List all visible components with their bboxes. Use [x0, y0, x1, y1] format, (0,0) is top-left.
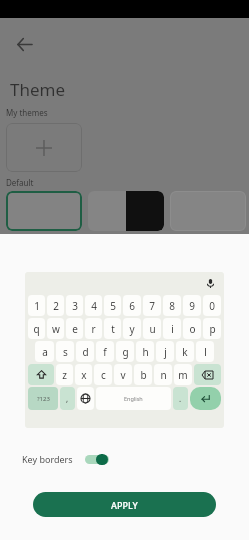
- button[interactable]: Backspace: [194, 364, 221, 385]
- button[interactable]: Back: [8, 28, 40, 60]
- staticText: .: [179, 393, 182, 404]
- staticText: Theme: [10, 78, 66, 101]
- button[interactable]: 4: [85, 295, 102, 316]
- staticText: r: [91, 322, 96, 336]
- button[interactable]: Change language: [77, 387, 94, 410]
- staticText: 9: [189, 299, 195, 313]
- button[interactable]: 8: [163, 295, 181, 316]
- button[interactable]: .: [173, 387, 188, 410]
- staticText: 8: [169, 299, 175, 313]
- staticText: z: [62, 368, 67, 382]
- staticText: 6: [129, 299, 135, 313]
- button[interactable]: Key borders: [22, 448, 249, 470]
- button[interactable]: 0: [203, 295, 221, 316]
- button[interactable]: ,: [60, 387, 75, 410]
- staticText: j: [164, 345, 167, 359]
- button[interactable]: 1: [28, 295, 45, 316]
- staticText: k: [182, 345, 188, 359]
- button[interactable]: Shift: [28, 364, 54, 385]
- staticText: q: [33, 322, 40, 336]
- staticText: s: [63, 345, 68, 359]
- button[interactable]: c: [94, 364, 112, 385]
- button[interactable]: i: [163, 318, 181, 339]
- staticText: c: [101, 368, 106, 382]
- button[interactable]: g: [116, 341, 134, 362]
- staticText: 7: [149, 299, 155, 313]
- staticText: g: [122, 345, 129, 359]
- button[interactable]: Voice input: [202, 275, 218, 291]
- staticText: v: [120, 368, 126, 382]
- button[interactable]: m: [174, 364, 192, 385]
- staticText: ?123: [37, 395, 50, 403]
- staticText: My themes: [6, 107, 48, 118]
- staticText: 4: [91, 299, 97, 313]
- button[interactable]: p: [203, 318, 221, 339]
- button[interactable]: s: [56, 341, 74, 362]
- staticText: h: [142, 345, 149, 359]
- staticText: 5: [110, 299, 116, 313]
- staticText: f: [103, 345, 107, 359]
- button[interactable]: d: [76, 341, 94, 362]
- staticText: x: [81, 368, 87, 382]
- button[interactable]: [88, 191, 164, 231]
- staticText: d: [82, 345, 89, 359]
- button[interactable]: w: [47, 318, 64, 339]
- staticText: p: [209, 322, 216, 336]
- button[interactable]: h: [136, 341, 154, 362]
- button[interactable]: k: [176, 341, 194, 362]
- staticText: w: [52, 322, 60, 336]
- button[interactable]: z: [56, 364, 73, 385]
- button[interactable]: q: [28, 318, 45, 339]
- staticText: APPLY: [111, 499, 138, 511]
- staticText: u: [149, 322, 156, 336]
- button[interactable]: 6: [123, 295, 141, 316]
- staticText: i: [171, 322, 174, 336]
- button[interactable]: Enter: [190, 387, 221, 410]
- button[interactable]: 5: [104, 295, 121, 316]
- button[interactable]: 7: [143, 295, 161, 316]
- button[interactable]: x: [75, 364, 92, 385]
- button[interactable]: u: [143, 318, 161, 339]
- button[interactable]: l: [196, 341, 214, 362]
- staticText: y: [129, 322, 135, 336]
- button[interactable]: t: [104, 318, 121, 339]
- button[interactable]: v: [114, 364, 132, 385]
- button[interactable]: b: [134, 364, 152, 385]
- button[interactable]: 9: [183, 295, 201, 316]
- button[interactable]: English: [96, 387, 171, 410]
- button[interactable]: o: [183, 318, 201, 339]
- button[interactable]: ?123: [28, 387, 58, 410]
- staticText: m: [178, 368, 188, 382]
- staticText: a: [42, 345, 48, 359]
- button[interactable]: r: [85, 318, 102, 339]
- staticText: ,: [66, 393, 69, 404]
- button[interactable]: j: [156, 341, 174, 362]
- staticText: l: [204, 345, 207, 359]
- staticText: Default: [6, 177, 34, 188]
- staticText: 1: [34, 299, 40, 313]
- button[interactable]: a: [35, 341, 54, 362]
- button[interactable]: e: [66, 318, 83, 339]
- staticText: English: [124, 395, 143, 402]
- staticText: t: [111, 322, 115, 336]
- staticText: 3: [72, 299, 78, 313]
- button[interactable]: 2: [47, 295, 64, 316]
- button[interactable]: Add theme: [6, 123, 82, 172]
- staticText: n: [160, 368, 167, 382]
- button[interactable]: 3: [66, 295, 83, 316]
- button[interactable]: n: [154, 364, 172, 385]
- staticText: Key borders: [22, 453, 73, 465]
- button[interactable]: APPLY: [33, 492, 216, 517]
- staticText: b: [140, 368, 147, 382]
- button[interactable]: y: [123, 318, 141, 339]
- button[interactable]: [6, 191, 82, 231]
- button[interactable]: f: [96, 341, 114, 362]
- staticText: 0: [209, 299, 215, 313]
- staticText: o: [189, 322, 196, 336]
- staticText: e: [72, 322, 78, 336]
- staticText: 2: [53, 299, 59, 313]
